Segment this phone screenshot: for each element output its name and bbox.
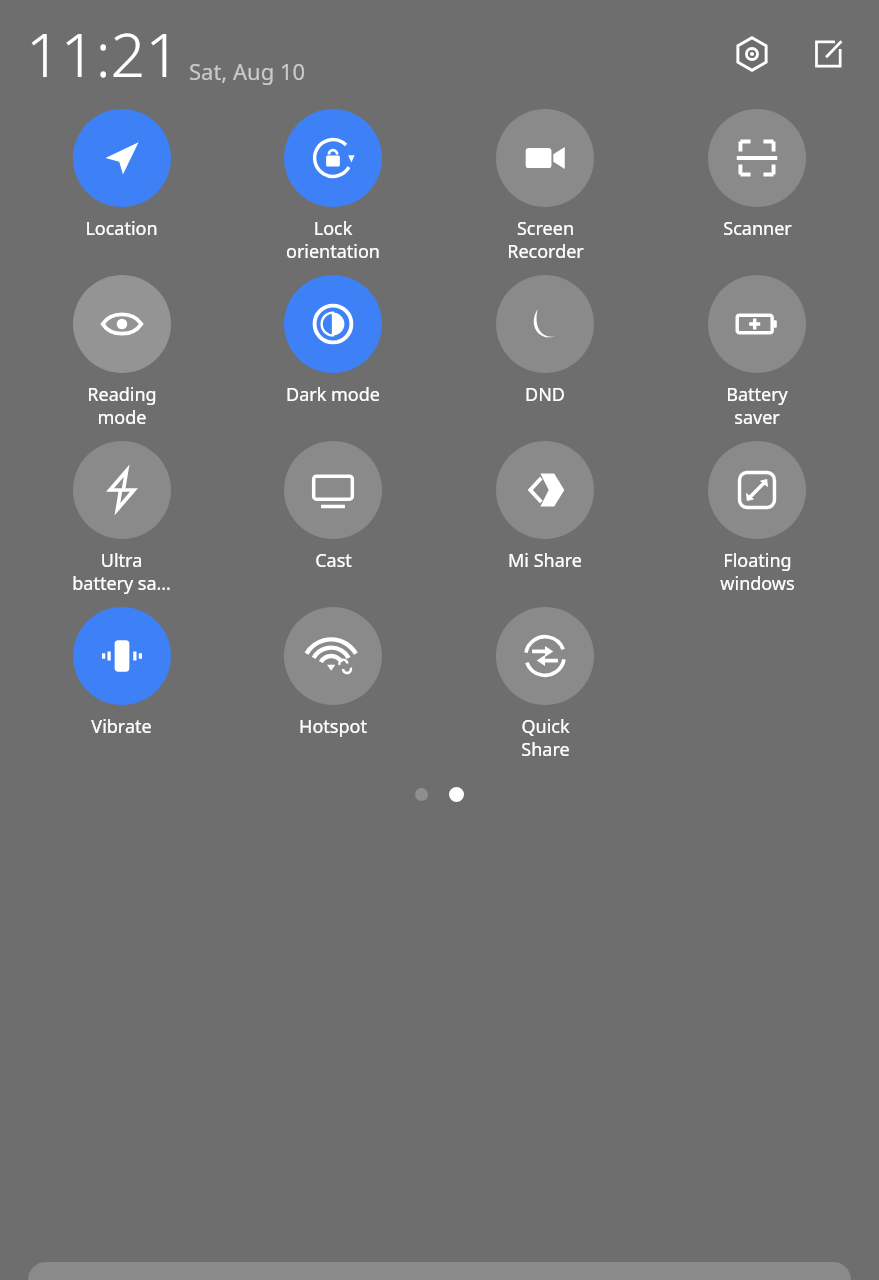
button[interactable]: Settings bbox=[729, 31, 775, 77]
staticText: Mi Share bbox=[508, 548, 582, 573]
staticText: Vibrate bbox=[91, 714, 152, 739]
button[interactable]: Lock orientation bbox=[227, 109, 439, 263]
button[interactable]: Quick Share bbox=[439, 607, 651, 761]
staticText: Sat, Aug 10 bbox=[189, 56, 306, 86]
button[interactable]: Reading mode bbox=[16, 275, 227, 429]
button[interactable]: Location bbox=[16, 109, 227, 241]
staticText: Cast bbox=[315, 548, 352, 573]
staticText: Location bbox=[85, 216, 158, 241]
staticText: Floating windows bbox=[720, 548, 795, 595]
button[interactable]: Scanner bbox=[651, 109, 863, 241]
button[interactable]: Dark mode bbox=[227, 275, 439, 407]
staticText: Battery saver bbox=[726, 382, 788, 429]
button[interactable]: Screen Recorder bbox=[439, 109, 651, 263]
button[interactable]: Edit bbox=[805, 31, 851, 77]
staticText: Screen Recorder bbox=[507, 216, 584, 263]
button[interactable]: Battery saver bbox=[651, 275, 863, 429]
staticText: Reading mode bbox=[87, 382, 157, 429]
staticText: Quick Share bbox=[521, 714, 570, 761]
staticText: DND bbox=[525, 382, 565, 407]
staticText: Dark mode bbox=[286, 382, 380, 407]
button[interactable]: Ultra battery sa… bbox=[16, 441, 227, 595]
staticText: Scanner bbox=[723, 216, 792, 241]
staticText: Hotspot bbox=[299, 714, 367, 739]
staticText: Lock orientation bbox=[286, 216, 380, 263]
staticText: 11:21 bbox=[26, 12, 181, 95]
button[interactable]: Vibrate bbox=[16, 607, 227, 739]
button[interactable]: DND bbox=[439, 275, 651, 407]
button[interactable]: Hotspot bbox=[227, 607, 439, 739]
staticText: Ultra battery sa… bbox=[72, 548, 171, 595]
button[interactable]: Floating windows bbox=[651, 441, 863, 595]
button[interactable]: Mi Share bbox=[439, 441, 651, 573]
button[interactable]: Cast bbox=[227, 441, 439, 573]
